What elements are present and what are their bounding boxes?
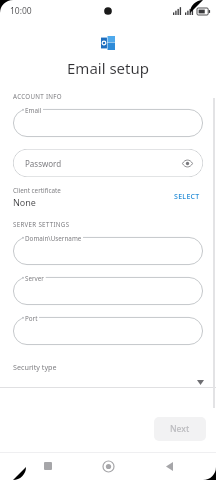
staticText: 10:00 bbox=[10, 5, 32, 17]
staticText: None bbox=[13, 196, 36, 208]
button[interactable]: Show password bbox=[180, 156, 194, 170]
button[interactable]: Port bbox=[13, 317, 203, 345]
staticText: Password bbox=[25, 158, 62, 169]
staticText: Next bbox=[170, 423, 190, 435]
staticText: SERVER SETTINGS bbox=[13, 220, 216, 228]
staticText: Domain\Username bbox=[25, 234, 82, 243]
button[interactable]: Recent apps bbox=[35, 453, 61, 479]
staticText: Security type bbox=[13, 362, 203, 372]
staticText: Email setup bbox=[0, 58, 216, 78]
staticText: Port bbox=[25, 314, 38, 323]
staticText: SELECT bbox=[174, 192, 200, 202]
button[interactable]: Security type bbox=[0, 357, 216, 388]
staticText: Email bbox=[25, 106, 42, 115]
staticText: Server bbox=[25, 274, 44, 283]
button[interactable]: Password bbox=[13, 149, 203, 177]
button[interactable]: Email bbox=[13, 109, 203, 137]
button[interactable]: Client certificate bbox=[13, 186, 171, 208]
button[interactable]: Back bbox=[156, 453, 182, 479]
button[interactable]: Next bbox=[154, 417, 206, 441]
staticText: Client certificate bbox=[13, 186, 61, 195]
button[interactable]: SELECT bbox=[171, 189, 203, 205]
staticText: ACCOUNT INFO bbox=[13, 92, 216, 100]
button[interactable]: Home bbox=[95, 453, 121, 479]
button[interactable]: Domain\Username bbox=[13, 237, 203, 265]
button[interactable]: Server bbox=[13, 277, 203, 305]
